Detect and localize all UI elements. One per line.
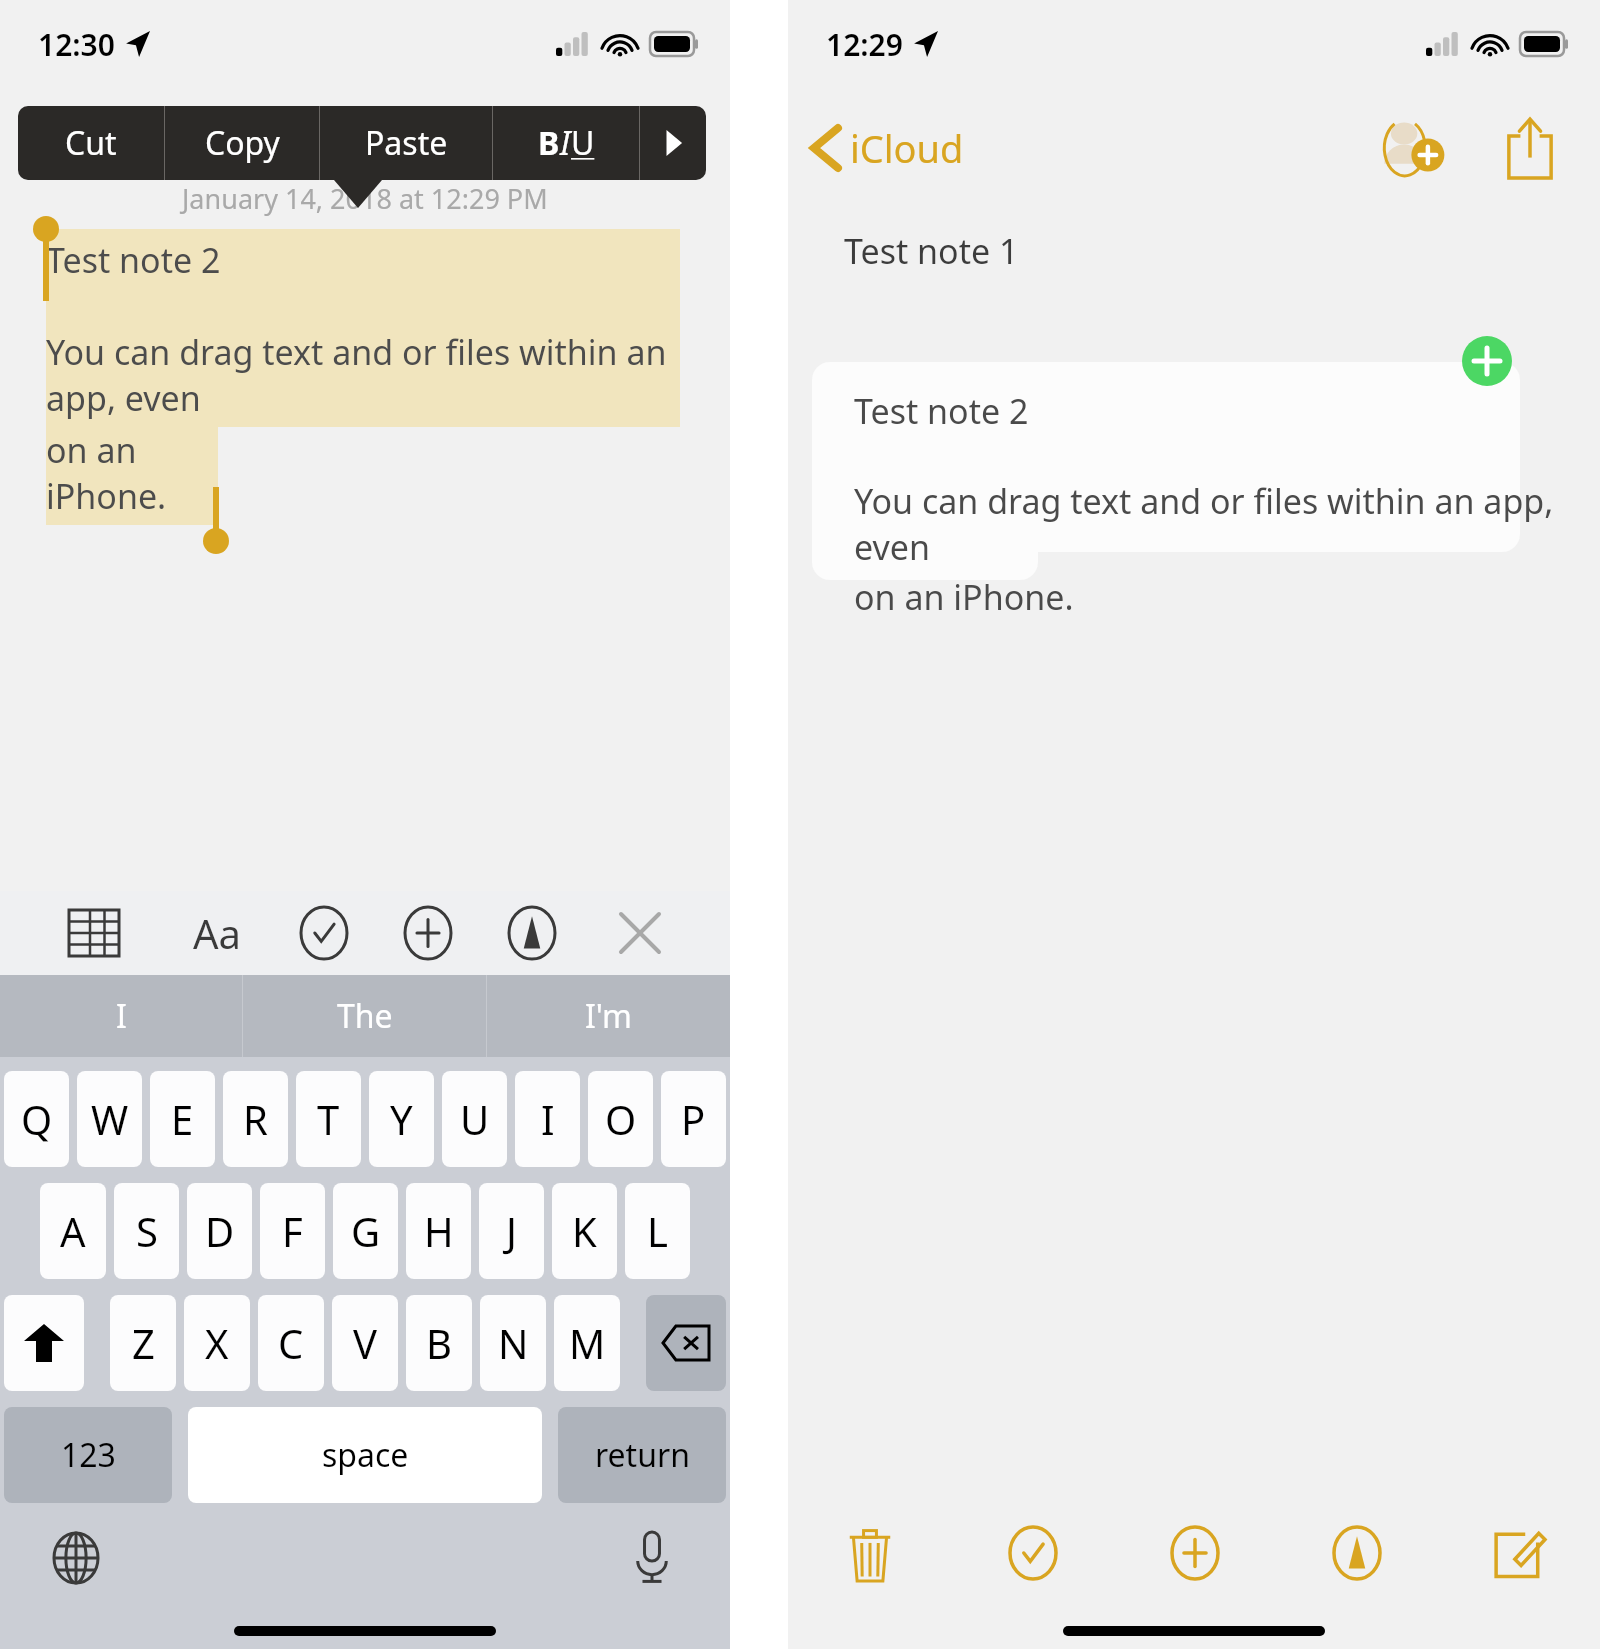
button[interactable]: Backspace <box>646 1295 726 1391</box>
staticText: Paste <box>365 121 448 165</box>
button[interactable]: iCloud <box>812 108 964 188</box>
button[interactable]: Z <box>110 1295 176 1391</box>
button[interactable]: L <box>625 1183 690 1279</box>
button[interactable]: U <box>442 1071 507 1167</box>
button[interactable]: Dictation <box>622 1528 682 1588</box>
staticText: 12:29 <box>826 24 903 65</box>
staticText: C <box>278 1316 304 1370</box>
staticText: H <box>424 1204 454 1258</box>
staticText: Y <box>390 1092 413 1146</box>
button[interactable]: K <box>552 1183 617 1279</box>
button[interactable]: Markup <box>1276 1493 1438 1613</box>
staticText: Cut <box>65 121 117 165</box>
staticText: L <box>647 1204 668 1258</box>
button[interactable]: D <box>187 1183 252 1279</box>
staticText: F <box>282 1204 303 1258</box>
staticText: iCloud <box>850 122 964 174</box>
button[interactable]: V <box>332 1295 398 1391</box>
button[interactable]: Markup <box>502 903 562 963</box>
staticText: I'm <box>585 994 633 1038</box>
button[interactable]: Copy <box>165 106 319 180</box>
button[interactable]: Add people <box>1374 106 1458 190</box>
button[interactable]: G <box>333 1183 398 1279</box>
staticText: E <box>171 1092 194 1146</box>
button[interactable]: P <box>661 1071 726 1167</box>
staticText: Test note 1 <box>844 228 1019 274</box>
button[interactable]: Shift <box>4 1295 84 1391</box>
staticText: P <box>681 1092 706 1146</box>
button[interactable]: I'm <box>487 975 730 1057</box>
button[interactable]: 123 <box>4 1407 172 1503</box>
staticText: Test note 2 <box>46 237 221 283</box>
button[interactable]: Paste <box>320 106 492 180</box>
staticText: 12:30 <box>38 24 115 65</box>
staticText: I <box>116 994 127 1038</box>
button[interactable]: R <box>223 1071 288 1167</box>
button[interactable]: Checklist <box>951 1493 1114 1613</box>
staticText: I <box>541 1092 555 1146</box>
staticText: The <box>337 994 393 1038</box>
button[interactable]: Add <box>398 903 458 963</box>
button[interactable]: Cut <box>18 106 164 180</box>
staticText: R <box>243 1092 268 1146</box>
button[interactable]: Aa <box>184 900 250 966</box>
button[interactable]: S <box>114 1183 179 1279</box>
button[interactable]: The <box>243 975 486 1057</box>
button[interactable]: Y <box>369 1071 434 1167</box>
staticText: G <box>351 1204 381 1258</box>
button[interactable]: Switch keyboard <box>46 1528 106 1588</box>
button[interactable]: Close <box>610 903 670 963</box>
button[interactable]: E <box>150 1071 215 1167</box>
button[interactable]: Copy <box>1462 336 1512 386</box>
staticText: space <box>322 1433 409 1477</box>
staticText: S <box>136 1204 158 1258</box>
button[interactable]: return <box>558 1407 726 1503</box>
staticText: Z <box>132 1316 155 1370</box>
staticText: You can drag text and or files within an… <box>854 478 1600 570</box>
staticText: 123 <box>61 1433 116 1477</box>
staticText: on an iPhone. <box>854 574 1074 620</box>
staticText: Copy <box>205 121 280 165</box>
button[interactable]: I <box>0 975 242 1057</box>
button[interactable]: X <box>184 1295 250 1391</box>
staticText: B <box>426 1316 452 1370</box>
button[interactable]: Add <box>1114 1493 1276 1613</box>
staticText: K <box>572 1204 597 1258</box>
staticText: J <box>506 1204 517 1258</box>
button[interactable]: Table <box>64 903 124 963</box>
staticText: Aa <box>193 906 241 960</box>
button[interactable]: B <box>406 1295 472 1391</box>
button[interactable]: space <box>188 1407 542 1503</box>
staticText: I <box>560 121 571 165</box>
staticText: O <box>605 1092 637 1146</box>
button[interactable]: Share <box>1494 112 1566 184</box>
button[interactable]: More <box>640 106 706 180</box>
staticText: M <box>569 1316 606 1370</box>
button[interactable]: T <box>296 1071 361 1167</box>
button[interactable]: W <box>77 1071 142 1167</box>
button[interactable]: F <box>260 1183 325 1279</box>
staticText: A <box>60 1204 86 1258</box>
staticText: W <box>91 1092 129 1146</box>
staticText: B <box>538 121 560 165</box>
button[interactable]: C <box>258 1295 324 1391</box>
button[interactable]: Q <box>4 1071 69 1167</box>
button[interactable]: O <box>588 1071 653 1167</box>
staticText: on an iPhone. <box>46 427 218 519</box>
button[interactable]: Delete <box>788 1493 951 1613</box>
staticText: D <box>205 1204 235 1258</box>
button[interactable]: Compose <box>1438 1493 1600 1613</box>
button[interactable]: B <box>493 106 639 180</box>
staticText: Test note 2 <box>854 388 1029 434</box>
button[interactable]: M <box>554 1295 620 1391</box>
staticText: X <box>205 1316 229 1370</box>
button[interactable]: Checklist <box>294 903 354 963</box>
staticText: Q <box>21 1092 53 1146</box>
staticText: T <box>317 1092 340 1146</box>
staticText: V <box>353 1316 377 1370</box>
button[interactable]: I <box>515 1071 580 1167</box>
button[interactable]: N <box>480 1295 546 1391</box>
button[interactable]: J <box>479 1183 544 1279</box>
button[interactable]: H <box>406 1183 471 1279</box>
button[interactable]: A <box>40 1183 106 1279</box>
